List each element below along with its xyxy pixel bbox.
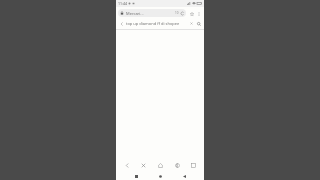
button[interactable]: More options (195, 10, 202, 17)
button[interactable]: Share (171, 159, 183, 171)
button[interactable]: Home (154, 159, 166, 171)
staticText: 10 (175, 11, 179, 15)
other: Refresh (181, 12, 184, 15)
button[interactable]: Back (121, 159, 133, 171)
button[interactable]: Recents (132, 172, 140, 180)
staticText: top up diamond ff di shopee (126, 21, 188, 26)
button[interactable]: Mercari... (118, 9, 186, 17)
button[interactable]: Clear (188, 20, 195, 27)
staticText: Mercari... (126, 11, 144, 16)
button[interactable]: Stop (137, 159, 149, 171)
button[interactable]: Back (180, 172, 188, 180)
staticText: 11:44 (118, 1, 127, 6)
button[interactable]: Back (118, 20, 125, 27)
button[interactable]: Search (195, 20, 202, 27)
button[interactable]: Tabs (187, 159, 199, 171)
button[interactable]: Home (156, 172, 164, 180)
button[interactable]: Bookmark (188, 10, 195, 17)
